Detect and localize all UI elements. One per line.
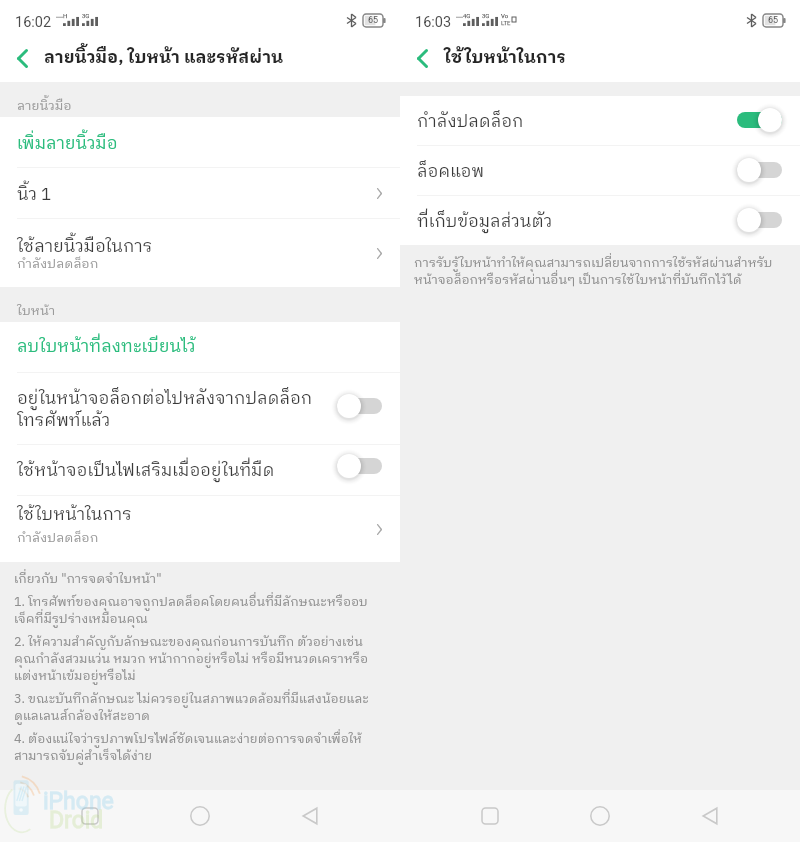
staticText: กำลังปลดล็อก <box>417 112 727 134</box>
staticText: ลายนิ้วมือ <box>17 95 72 116</box>
button[interactable]: Back <box>282 790 338 842</box>
button[interactable]: Recent apps <box>462 790 518 842</box>
staticText: 16:03 <box>415 14 452 31</box>
button[interactable]: Recent apps <box>62 790 118 842</box>
staticText: Droid <box>49 807 104 834</box>
staticText: 65 <box>368 15 379 26</box>
button[interactable]: เพิ่มลายนิ้วมือ <box>0 117 400 167</box>
button[interactable]: กำลังปลดล็อก <box>400 96 800 145</box>
staticText: ล็อคแอพ <box>417 162 727 184</box>
staticText: 3. ขณะบันทึกลักษณะ ไม่ควรอยู่ในสภาพแวดล้… <box>14 691 369 725</box>
staticText: ใช้ลายนิ้วมือในการ <box>17 233 153 261</box>
button[interactable]: ลบใบหน้าที่ลงทะเบียนไว้ <box>0 322 400 372</box>
staticText: อยู่ในหน้าจอล็อกต่อไปหลังจากปลดล็อก โทรศ… <box>17 389 327 433</box>
staticText: 3G <box>82 12 90 19</box>
staticText: ลายนิ้วมือ, ใบหน้า และรหัสผ่าน <box>44 44 284 72</box>
staticText: ลบใบหน้าที่ลงทะเบียนไว้ <box>17 333 196 361</box>
button[interactable]: อยู่ในหน้าจอล็อกต่อไปหลังจากปลดล็อก โทรศ… <box>0 373 400 444</box>
button[interactable]: ใช้ลายนิ้วมือในการ <box>0 219 400 287</box>
staticText: H <box>63 12 68 19</box>
staticText: LTE <box>501 19 511 26</box>
staticText: ใบหน้า <box>17 300 56 321</box>
button[interactable]: Back <box>682 790 738 842</box>
button[interactable]: ใช้ใบหน้าในการ <box>0 496 400 562</box>
staticText: 1. โทรศัพท์ของคุณอาจถูกปลดล็อคโดยคนอื่นท… <box>14 594 368 628</box>
staticText: ใช้ใบหน้าในการ <box>17 501 132 529</box>
staticText: กำลังปลดล็อก <box>17 527 99 548</box>
button[interactable]: Home <box>172 790 228 842</box>
staticText: 4. ต้องแน่ใจว่ารูปภาพโปรไฟล์ชัดเจนและง่า… <box>14 731 363 765</box>
button[interactable]: Back <box>400 34 444 82</box>
staticText: 3G <box>482 12 490 19</box>
staticText: ใช้ใบหน้าในการ <box>444 44 566 72</box>
staticText: การรับรู้ใบหน้าทำให้คุณสามารถเปลี่ยนจากก… <box>414 255 773 289</box>
button[interactable]: Home <box>572 790 628 842</box>
staticText: เกี่ยวกับ "การจดจำใบหน้า" <box>14 571 162 588</box>
staticText: นิ้ว 1 <box>17 181 52 209</box>
staticText: ใช้หน้าจอเป็นไฟเสริมเมื่ออยู่ในที่มืด <box>17 461 327 483</box>
staticText: ที่เก็บข้อมูลส่วนตัว <box>417 212 727 234</box>
staticText: 2. ให้ความสำคัญกับลักษณะของคุณก่อนการบัน… <box>14 634 369 685</box>
staticText: iPhone <box>43 788 114 815</box>
button[interactable]: นิ้ว 1 <box>0 168 400 218</box>
staticText: 4G <box>463 12 471 19</box>
staticText: 16:02 <box>15 14 52 31</box>
staticText: กำลังปลดล็อก <box>17 253 99 274</box>
button[interactable]: Back <box>0 34 44 82</box>
staticText: 65 <box>768 15 779 26</box>
button[interactable]: ที่เก็บข้อมูลส่วนตัว <box>400 196 800 245</box>
staticText: Vo <box>501 12 509 19</box>
button[interactable]: ล็อคแอพ <box>400 146 800 195</box>
staticText: เพิ่มลายนิ้วมือ <box>17 130 118 158</box>
button[interactable]: ใช้หน้าจอเป็นไฟเสริมเมื่ออยู่ในที่มืด <box>0 445 400 495</box>
